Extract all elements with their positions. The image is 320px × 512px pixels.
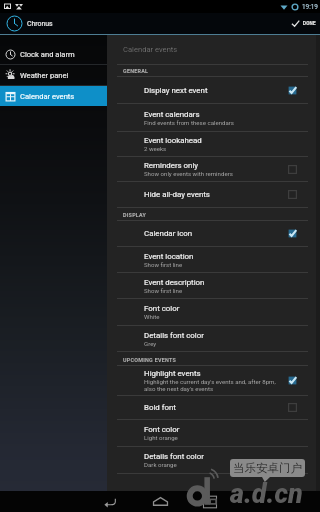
button[interactable]: Hide all-day events [107,182,320,207]
staticText: Calendar events [20,92,75,101]
button[interactable]: Home [135,491,185,512]
button[interactable]: Calendar events [0,86,107,106]
button[interactable]: Display next event [107,77,320,103]
button[interactable]: Details font color [107,326,320,351]
button[interactable]: Event lookahead [107,132,320,156]
staticText: Details font color [144,331,204,340]
button[interactable]: Font color [107,299,320,325]
button[interactable]: Bold font [107,396,320,419]
button[interactable]: Clock and alarm [0,44,107,64]
staticText: also the next day's events [144,385,214,392]
staticText: Highlight events [144,369,201,378]
staticText: Chronus [27,20,53,28]
button[interactable]: Highlight events [107,366,320,395]
button[interactable]: Weather panel [0,65,107,85]
staticText: Dark orange [144,461,177,468]
staticText: Light orange [144,434,178,441]
staticText: Find events from these calendars [144,119,234,126]
staticText: a.d.cn [230,478,303,510]
staticText: Show only events with reminders [144,170,233,177]
button[interactable]: Event description [107,273,320,298]
staticText: 2 weeks [144,145,167,152]
button[interactable]: Calendar icon [107,221,320,246]
button[interactable]: Details font color [107,447,320,473]
staticText: 当乐安卓门户 [233,461,302,475]
staticText: GENERAL [123,68,149,74]
staticText: Bold font [144,403,176,412]
staticText: Grey [144,340,157,347]
button[interactable]: Back [85,491,135,512]
staticText: Highlight the current day's events and, … [144,378,276,385]
button[interactable]: Font color [107,420,320,446]
staticText: Hide all-day events [144,190,210,199]
button[interactable]: Recent apps [185,491,235,512]
staticText: Event description [144,278,205,287]
staticText: Font color [144,304,180,313]
staticText: Clock and alarm [20,50,75,59]
staticText: DISPLAY [123,212,147,218]
button[interactable]: Event location [107,247,320,272]
staticText: Weather panel [20,71,69,80]
staticText: Show first line [144,287,183,294]
button[interactable]: Event calendars [107,104,320,131]
staticText: DONE [303,21,316,26]
staticText: Display next event [144,86,208,95]
staticText: White [144,313,160,320]
staticText: Calendar events [123,45,178,54]
staticText: UPCOMING EVENTS [123,357,177,363]
staticText: 19:19 [302,3,318,11]
staticText: Calendar icon [144,229,193,238]
staticText: Event calendars [144,110,200,119]
button[interactable]: Reminders only [107,157,320,181]
staticText: Font color [144,425,180,434]
button[interactable]: DONE [287,13,320,34]
staticText: Event lookahead [144,136,202,145]
staticText: Event location [144,252,194,261]
staticText: Details font color [144,452,204,461]
staticText: Show first line [144,261,183,268]
staticText: Reminders only [144,161,199,170]
